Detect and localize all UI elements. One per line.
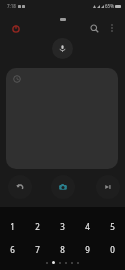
button[interactable]: Camera xyxy=(51,175,75,199)
staticText: 1 xyxy=(10,221,15,232)
button[interactable]: 6 xyxy=(0,243,25,255)
button[interactable]: 7 xyxy=(25,243,50,255)
button[interactable]: Skip next xyxy=(96,175,120,199)
staticText: 3 xyxy=(60,221,65,232)
button[interactable]: 5 xyxy=(100,220,125,232)
button[interactable]: 4 xyxy=(75,220,100,232)
staticText: 7 xyxy=(35,244,40,255)
staticText: 8 xyxy=(60,244,65,255)
staticText: 9 xyxy=(85,244,90,255)
button[interactable]: Record xyxy=(6,19,26,39)
button[interactable]: 0 xyxy=(100,243,125,255)
staticText: 0 xyxy=(110,244,115,255)
button[interactable]: Microphone xyxy=(52,38,73,59)
button[interactable]: 1 xyxy=(0,220,25,232)
button[interactable]: 8 xyxy=(50,243,75,255)
button[interactable]: Search xyxy=(84,18,104,38)
button[interactable]: More options xyxy=(102,18,122,38)
staticText: 4 xyxy=(85,221,90,232)
button[interactable]: 2 xyxy=(25,220,50,232)
staticText: 5 xyxy=(110,221,115,232)
staticText: 6 xyxy=(10,244,15,255)
staticText: 7:18 xyxy=(7,3,16,9)
button[interactable]: History xyxy=(12,74,21,83)
button[interactable]: 9 xyxy=(75,243,100,255)
button[interactable]: Undo xyxy=(8,175,32,199)
staticText: 2 xyxy=(35,221,40,232)
button[interactable]: 3 xyxy=(50,220,75,232)
staticText: 65% xyxy=(105,3,114,9)
